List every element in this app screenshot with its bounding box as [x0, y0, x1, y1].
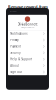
button[interactable]: About	[8, 62, 47, 69]
staticText: Remove reward from	[8, 4, 48, 9]
button[interactable]: Privacy	[8, 37, 47, 43]
staticText: Payment	[10, 45, 21, 48]
staticText: Notifications	[10, 32, 27, 35]
button[interactable]: Payment	[8, 43, 47, 50]
button[interactable]: Notifications	[8, 30, 47, 37]
staticText: your 25,000 journal	[10, 10, 46, 15]
staticText: Olivia Bennett	[17, 23, 37, 26]
button[interactable]: Help & Support	[8, 56, 47, 62]
button[interactable]: Sign out	[8, 69, 47, 75]
staticText: Help & Support	[10, 57, 32, 61]
staticText: olivia@example.com	[21, 26, 34, 28]
staticText: Security	[10, 51, 20, 54]
staticText: About	[10, 64, 19, 67]
staticText: Privacy	[10, 38, 18, 42]
staticText: Sign out	[10, 70, 22, 74]
button[interactable]: Security	[8, 50, 47, 56]
staticText: account	[10, 10, 16, 12]
